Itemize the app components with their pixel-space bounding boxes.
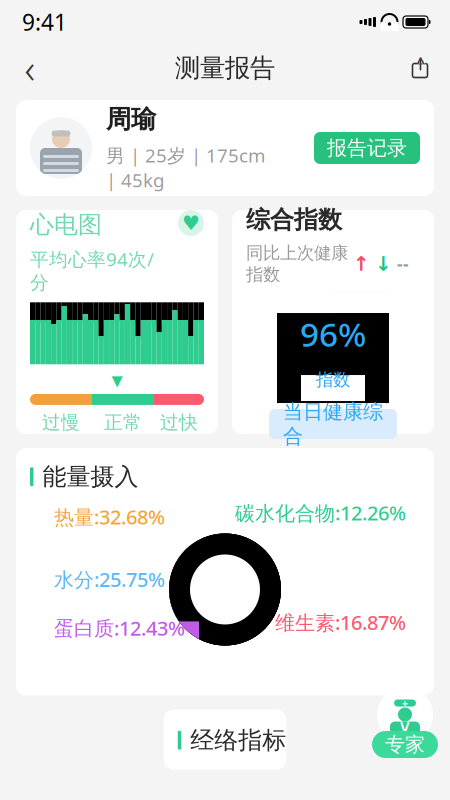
button[interactable]: Share bbox=[398, 46, 442, 90]
staticText: 96% bbox=[300, 312, 366, 356]
staticText: 同比上次健康指数 bbox=[246, 242, 348, 285]
staticText: 测量报告 bbox=[175, 52, 275, 83]
staticText: 平均心率94次/分 bbox=[30, 247, 154, 294]
staticText: 维生素:16.87% bbox=[275, 609, 406, 635]
staticText: -- bbox=[397, 252, 409, 275]
staticText: 过慢 bbox=[42, 411, 80, 434]
staticText: 能量摄入 bbox=[42, 462, 138, 491]
button[interactable]: 报告记录 bbox=[314, 132, 420, 164]
staticText: 专家 bbox=[385, 732, 425, 757]
staticText: ↓ bbox=[375, 252, 392, 275]
staticText: ‹ bbox=[24, 41, 35, 94]
staticText: 周瑜 bbox=[106, 104, 156, 135]
staticText: 正常 bbox=[104, 411, 142, 434]
staticText: ▼ bbox=[111, 372, 122, 389]
staticText: ↑ bbox=[353, 252, 370, 275]
staticText: 蛋白质:12.43% bbox=[54, 615, 185, 641]
staticText: 经络指标 bbox=[190, 725, 286, 755]
button[interactable]: 当日健康综合 bbox=[269, 409, 397, 439]
staticText: 综合指数 bbox=[246, 205, 342, 234]
staticText: 心电图 bbox=[30, 210, 102, 240]
staticText: 过快 bbox=[160, 411, 198, 434]
staticText: 报告记录 bbox=[327, 136, 407, 160]
staticText: 男 | 25岁 | 175cm | 45kg bbox=[106, 143, 265, 192]
button[interactable]: Back bbox=[8, 46, 52, 90]
staticText: 9:41 bbox=[22, 7, 67, 37]
staticText: 指数 bbox=[316, 369, 350, 390]
staticText: + bbox=[402, 696, 408, 710]
staticText: 当日健康综合 bbox=[283, 399, 383, 449]
staticText: ♥ bbox=[182, 212, 200, 234]
staticText: ^ bbox=[416, 52, 424, 72]
staticText: V bbox=[400, 717, 410, 736]
staticText: 碳水化合物:12.26% bbox=[235, 499, 406, 526]
staticText: 热量:32.68% bbox=[54, 503, 165, 530]
button[interactable]: 专家 bbox=[372, 687, 438, 758]
staticText: 水分:25.75% bbox=[54, 566, 165, 593]
